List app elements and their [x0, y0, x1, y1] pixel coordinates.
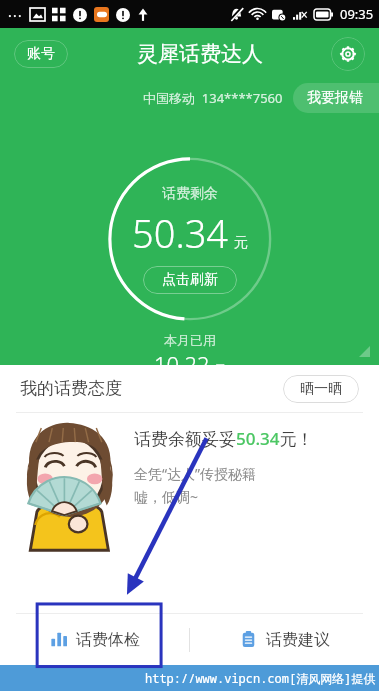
button[interactable]: 话费体检 [0, 614, 189, 665]
staticText: 晒一晒 [300, 380, 342, 398]
staticText: 我的话费态度 [20, 378, 122, 399]
staticText: 50.34 [132, 207, 229, 259]
staticText: 09:35 [340, 5, 374, 23]
button[interactable]: 话费建议 [190, 614, 379, 665]
button[interactable]: 我要报错 [293, 83, 379, 113]
staticText: 话费剩余 [162, 185, 218, 203]
staticText: 本月已用 [164, 332, 216, 348]
staticText: 灵犀话费达人 [137, 41, 263, 67]
staticText: 话费建议 [266, 630, 330, 650]
button[interactable]: Settings [331, 37, 365, 71]
staticText: 话费体检 [76, 630, 140, 650]
staticText: 10.22 [154, 349, 210, 379]
staticText: 账号 [27, 45, 55, 63]
button[interactable]: 账号 [14, 40, 68, 68]
staticText: 中国移动 134****7560 [143, 89, 283, 107]
staticText: 元 [234, 234, 248, 252]
staticText: 嘘，低调~ [134, 487, 199, 506]
staticText: http://www.vipcn.com[清风网络]提供 [145, 670, 376, 686]
staticText: 元 [214, 361, 226, 376]
button[interactable]: 点击刷新 [143, 266, 237, 294]
button[interactable]: 晒一晒 [283, 375, 359, 403]
staticText: 我要报错 [307, 89, 363, 107]
staticText: 点击刷新 [162, 271, 218, 289]
staticText: 话费余额妥妥50.34元！ [134, 427, 314, 450]
staticText: 全凭“达人”传授秘籍 [134, 464, 257, 483]
